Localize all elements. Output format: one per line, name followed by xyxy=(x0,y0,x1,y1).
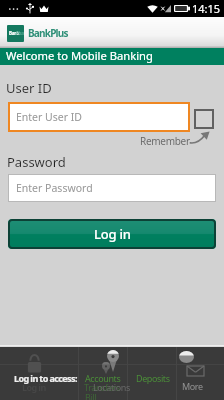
button[interactable]: More xyxy=(177,347,224,400)
staticText: Password xyxy=(7,153,66,171)
button[interactable]: Log in xyxy=(8,219,216,249)
staticText: Accounts xyxy=(85,372,121,384)
staticText: User ID xyxy=(6,79,52,97)
button[interactable]: Deposits xyxy=(128,347,176,400)
button[interactable]: Log in to access: xyxy=(0,347,78,400)
staticText: Plus xyxy=(16,30,24,36)
staticText: Log in xyxy=(94,225,131,243)
staticText: Bank xyxy=(9,30,20,36)
staticText: Enter User ID xyxy=(16,110,83,124)
staticText: Transfers xyxy=(84,381,120,393)
staticText: Deposits xyxy=(136,372,170,384)
staticText: BankPlus xyxy=(28,26,68,40)
staticText: Bill xyxy=(85,391,97,400)
staticText: 14:15 xyxy=(192,1,221,16)
button[interactable]: Accounts xyxy=(79,347,127,400)
button[interactable]: Enter User ID xyxy=(8,102,190,132)
staticText: Log in to access: xyxy=(14,372,77,384)
staticText: Enter Password xyxy=(16,181,93,195)
staticText: More xyxy=(182,380,203,392)
staticText: Log in xyxy=(22,381,46,393)
staticText: Remember xyxy=(140,134,190,148)
staticText: Welcome to Mobile Banking xyxy=(6,48,153,63)
button[interactable]: Enter Password xyxy=(8,174,216,202)
button[interactable]: Remember me xyxy=(194,109,214,129)
staticText: Locations xyxy=(93,381,130,393)
